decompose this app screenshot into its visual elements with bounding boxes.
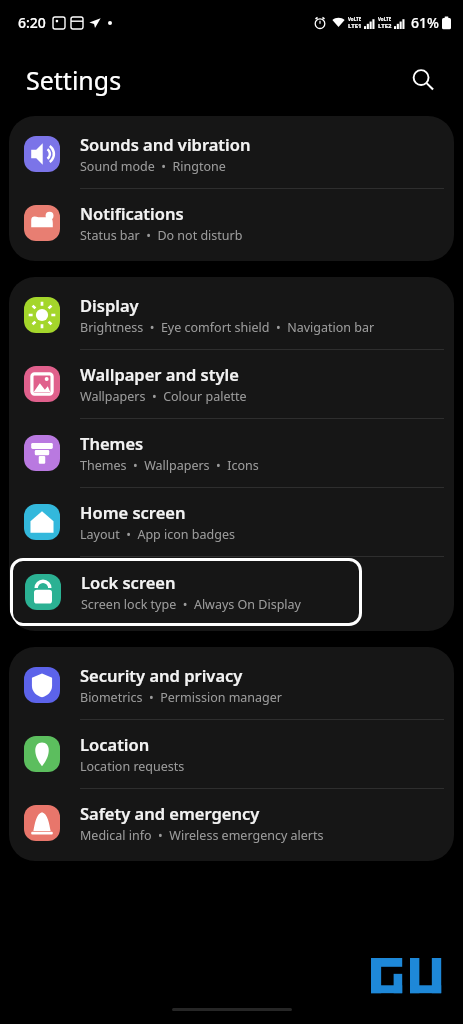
button[interactable]: Wallpaper and style <box>9 350 454 418</box>
button[interactable]: Security and privacy <box>9 651 454 719</box>
staticText: Safety and emergency <box>80 802 260 824</box>
staticText: Layout • App icon badges <box>80 526 235 543</box>
staticText: Themes <box>80 432 144 454</box>
staticText: Security and privacy <box>80 664 243 686</box>
staticText: Sound mode • Ringtone <box>80 158 226 175</box>
staticText: Settings <box>26 63 122 97</box>
staticText: Location <box>80 733 150 755</box>
staticText: Medical info • Wireless emergency alerts <box>80 827 324 844</box>
staticText: Themes • Wallpapers • Icons <box>80 457 259 474</box>
staticText: VoLTE <box>378 16 392 22</box>
button[interactable]: Location <box>9 720 454 788</box>
button[interactable]: Sounds and vibration <box>9 120 454 188</box>
staticText: Screen lock type • Always On Display <box>81 596 301 613</box>
staticText: LTE2 <box>378 22 392 30</box>
staticText: Wallpapers • Colour palette <box>80 388 247 405</box>
staticText: 6:20 <box>18 13 46 32</box>
staticText: Display <box>80 294 139 316</box>
staticText: Brightness • Eye comfort shield • Naviga… <box>80 319 375 336</box>
button[interactable]: Themes <box>9 419 454 487</box>
staticText: 61% <box>411 13 439 32</box>
button[interactable]: Home screen <box>9 488 454 556</box>
button[interactable]: Search <box>403 60 443 100</box>
staticText: Status bar • Do not disturb <box>80 227 243 244</box>
staticText: Notifications <box>80 202 184 224</box>
button[interactable]: Display <box>9 281 454 349</box>
button[interactable]: Safety and emergency <box>9 789 454 857</box>
button[interactable]: Lock screen <box>10 558 362 626</box>
staticText: Home screen <box>80 501 186 523</box>
staticText: Lock screen <box>81 571 176 593</box>
staticText: Biometrics • Permission manager <box>80 689 283 706</box>
staticText: Wallpaper and style <box>80 363 239 385</box>
staticText: LTE1 <box>348 22 362 30</box>
button[interactable]: Notifications <box>9 189 454 257</box>
staticText: Location requests <box>80 758 185 775</box>
staticText: VoLTE <box>348 16 362 22</box>
staticText: Sounds and vibration <box>80 133 251 155</box>
